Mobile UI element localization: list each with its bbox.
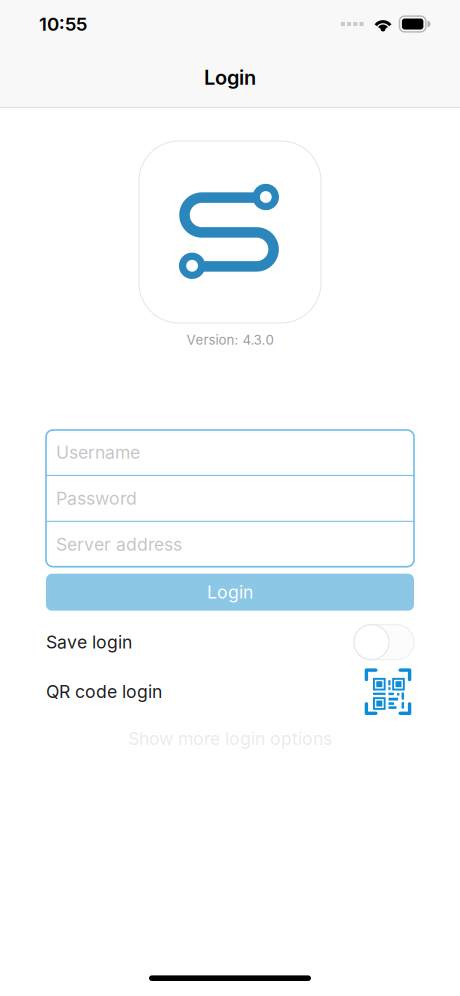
- staticText: Save login: [46, 632, 132, 653]
- staticText: Server address: [56, 534, 182, 555]
- staticText: QR code login: [46, 681, 162, 702]
- staticText: 10:55: [39, 13, 87, 35]
- button[interactable]: QR code login: [46, 664, 414, 720]
- staticText: Username: [56, 442, 140, 463]
- staticText: Login: [204, 65, 256, 90]
- button[interactable]: Show more login options: [46, 726, 414, 752]
- staticText: Login: [207, 582, 253, 603]
- staticText: Show more login options: [128, 728, 332, 749]
- staticText: Password: [56, 488, 137, 509]
- button[interactable]: Login: [46, 574, 414, 611]
- button[interactable]: Save login: [354, 625, 414, 660]
- staticText: Version: 4.3.0: [186, 332, 273, 348]
